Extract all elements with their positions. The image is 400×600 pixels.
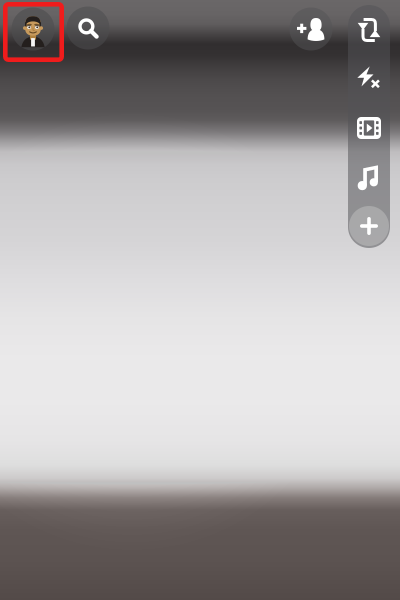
button[interactable]: Music xyxy=(348,155,390,201)
button[interactable]: Flash off xyxy=(348,55,390,101)
button[interactable]: Search xyxy=(66,6,109,49)
button[interactable]: Add friends xyxy=(289,7,332,50)
button[interactable]: More tools xyxy=(347,204,391,248)
button[interactable]: Clips xyxy=(348,105,390,151)
button[interactable]: Flip camera xyxy=(348,7,390,53)
button[interactable]: Profile xyxy=(11,7,54,50)
